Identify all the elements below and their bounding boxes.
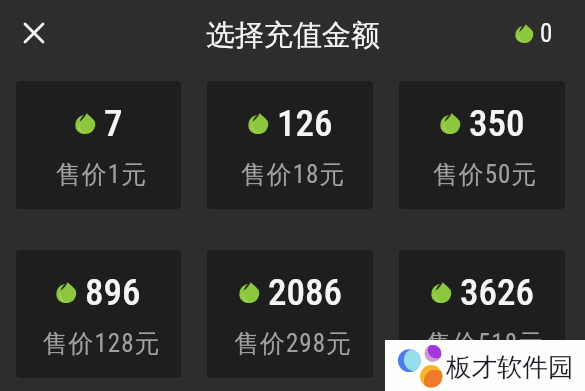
staticText: 选择充值金额 bbox=[206, 17, 380, 54]
button[interactable]: 896 bbox=[16, 250, 181, 378]
button[interactable]: 126 bbox=[207, 81, 373, 209]
staticText: 126 bbox=[277, 102, 333, 145]
button[interactable]: Close bbox=[12, 11, 56, 55]
staticText: 3626 bbox=[460, 271, 534, 314]
staticText: 售价18元 bbox=[210, 159, 373, 190]
button[interactable]: 350 bbox=[399, 81, 565, 209]
staticText: 售价1元 bbox=[19, 159, 181, 190]
staticText: 350 bbox=[469, 102, 525, 145]
staticText: 售价518元 bbox=[402, 328, 565, 359]
button[interactable]: 2086 bbox=[207, 250, 373, 378]
button[interactable]: 3626 bbox=[399, 250, 565, 378]
staticText: 售价128元 bbox=[19, 328, 181, 359]
staticText: 售价50元 bbox=[402, 159, 565, 190]
staticText: 7 bbox=[104, 102, 123, 145]
button[interactable]: Balance 0 bbox=[515, 19, 553, 48]
staticText: 0 bbox=[540, 19, 553, 48]
staticText: 售价298元 bbox=[210, 328, 373, 359]
button[interactable]: 7 bbox=[16, 81, 181, 209]
staticText: 896 bbox=[85, 271, 141, 314]
staticText: 2086 bbox=[268, 271, 342, 314]
staticText: 板才软件园 bbox=[446, 351, 574, 383]
